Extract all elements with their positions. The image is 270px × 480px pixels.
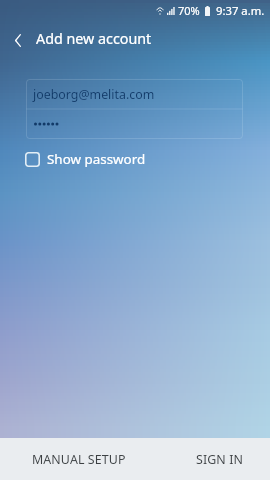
staticText: Add new account (36, 29, 152, 48)
staticText: 9:37 a.m. (216, 3, 265, 18)
button[interactable] (26, 109, 243, 139)
staticText: joeborg@melita.com (33, 86, 155, 103)
staticText: Show password (47, 150, 146, 168)
button[interactable]: joeborg@melita.com (26, 79, 243, 109)
button[interactable]: Show password (21, 147, 154, 171)
staticText: 70% (178, 3, 200, 18)
button[interactable]: Navigate up (2, 24, 34, 56)
button[interactable]: SIGN IN (135, 438, 270, 480)
staticText: SIGN IN (196, 451, 243, 468)
button[interactable]: MANUAL SETUP (0, 438, 135, 480)
staticText: MANUAL SETUP (32, 451, 126, 468)
